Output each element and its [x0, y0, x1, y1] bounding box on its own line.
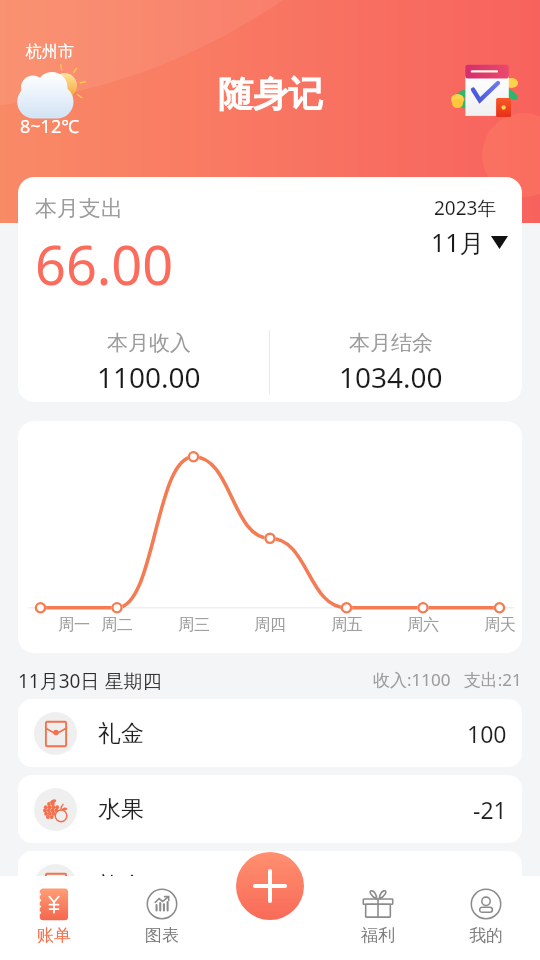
staticText: 礼金 — [98, 871, 144, 900]
staticText: 周四 — [254, 615, 286, 635]
staticText: 周二 — [101, 615, 133, 635]
button[interactable]: Add — [236, 852, 304, 920]
staticText: 福利 — [361, 925, 395, 946]
staticText: 100 — [467, 718, 507, 749]
staticText: 周三 — [178, 615, 210, 635]
staticText: 账单 — [37, 925, 71, 946]
staticText: 图表 — [145, 925, 179, 946]
staticText: 杭州市 — [26, 42, 74, 62]
staticText: 66.00 — [35, 227, 174, 301]
button[interactable]: 礼金 — [18, 699, 522, 767]
button[interactable]: 福利 — [324, 888, 432, 946]
staticText: 礼金 — [98, 719, 144, 748]
button[interactable]: 我的 — [432, 888, 540, 946]
staticText: 周天 — [484, 615, 516, 635]
staticText: 本月结余 — [349, 330, 433, 356]
staticText: 我的 — [469, 925, 503, 946]
staticText: 11月 — [431, 225, 485, 259]
staticText: -21 — [473, 794, 507, 825]
staticText: 1100.00 — [97, 358, 201, 396]
staticText: 本月收入 — [107, 330, 191, 356]
staticText: 2023年 — [434, 195, 497, 221]
button[interactable]: 图表 — [108, 888, 216, 946]
staticText: 收入:1100 支出:21 — [373, 668, 522, 691]
staticText: 随身记 — [218, 72, 323, 116]
button[interactable]: 水果 — [18, 775, 522, 843]
staticText: 水果 — [98, 795, 144, 824]
staticText: 周五 — [331, 615, 363, 635]
button[interactable]: Calendar — [452, 56, 522, 126]
staticText: 周六 — [407, 615, 439, 635]
button[interactable]: 账单 — [0, 888, 108, 946]
staticText: 8~12℃ — [20, 114, 80, 139]
staticText: 周一 — [58, 615, 90, 635]
button[interactable]: 礼金 — [18, 851, 522, 919]
staticText: 1000 — [454, 870, 507, 901]
staticText: 11月30日 星期四 — [18, 668, 162, 694]
staticText: 本月支出 — [35, 195, 123, 223]
staticText: 1034.00 — [339, 358, 443, 396]
